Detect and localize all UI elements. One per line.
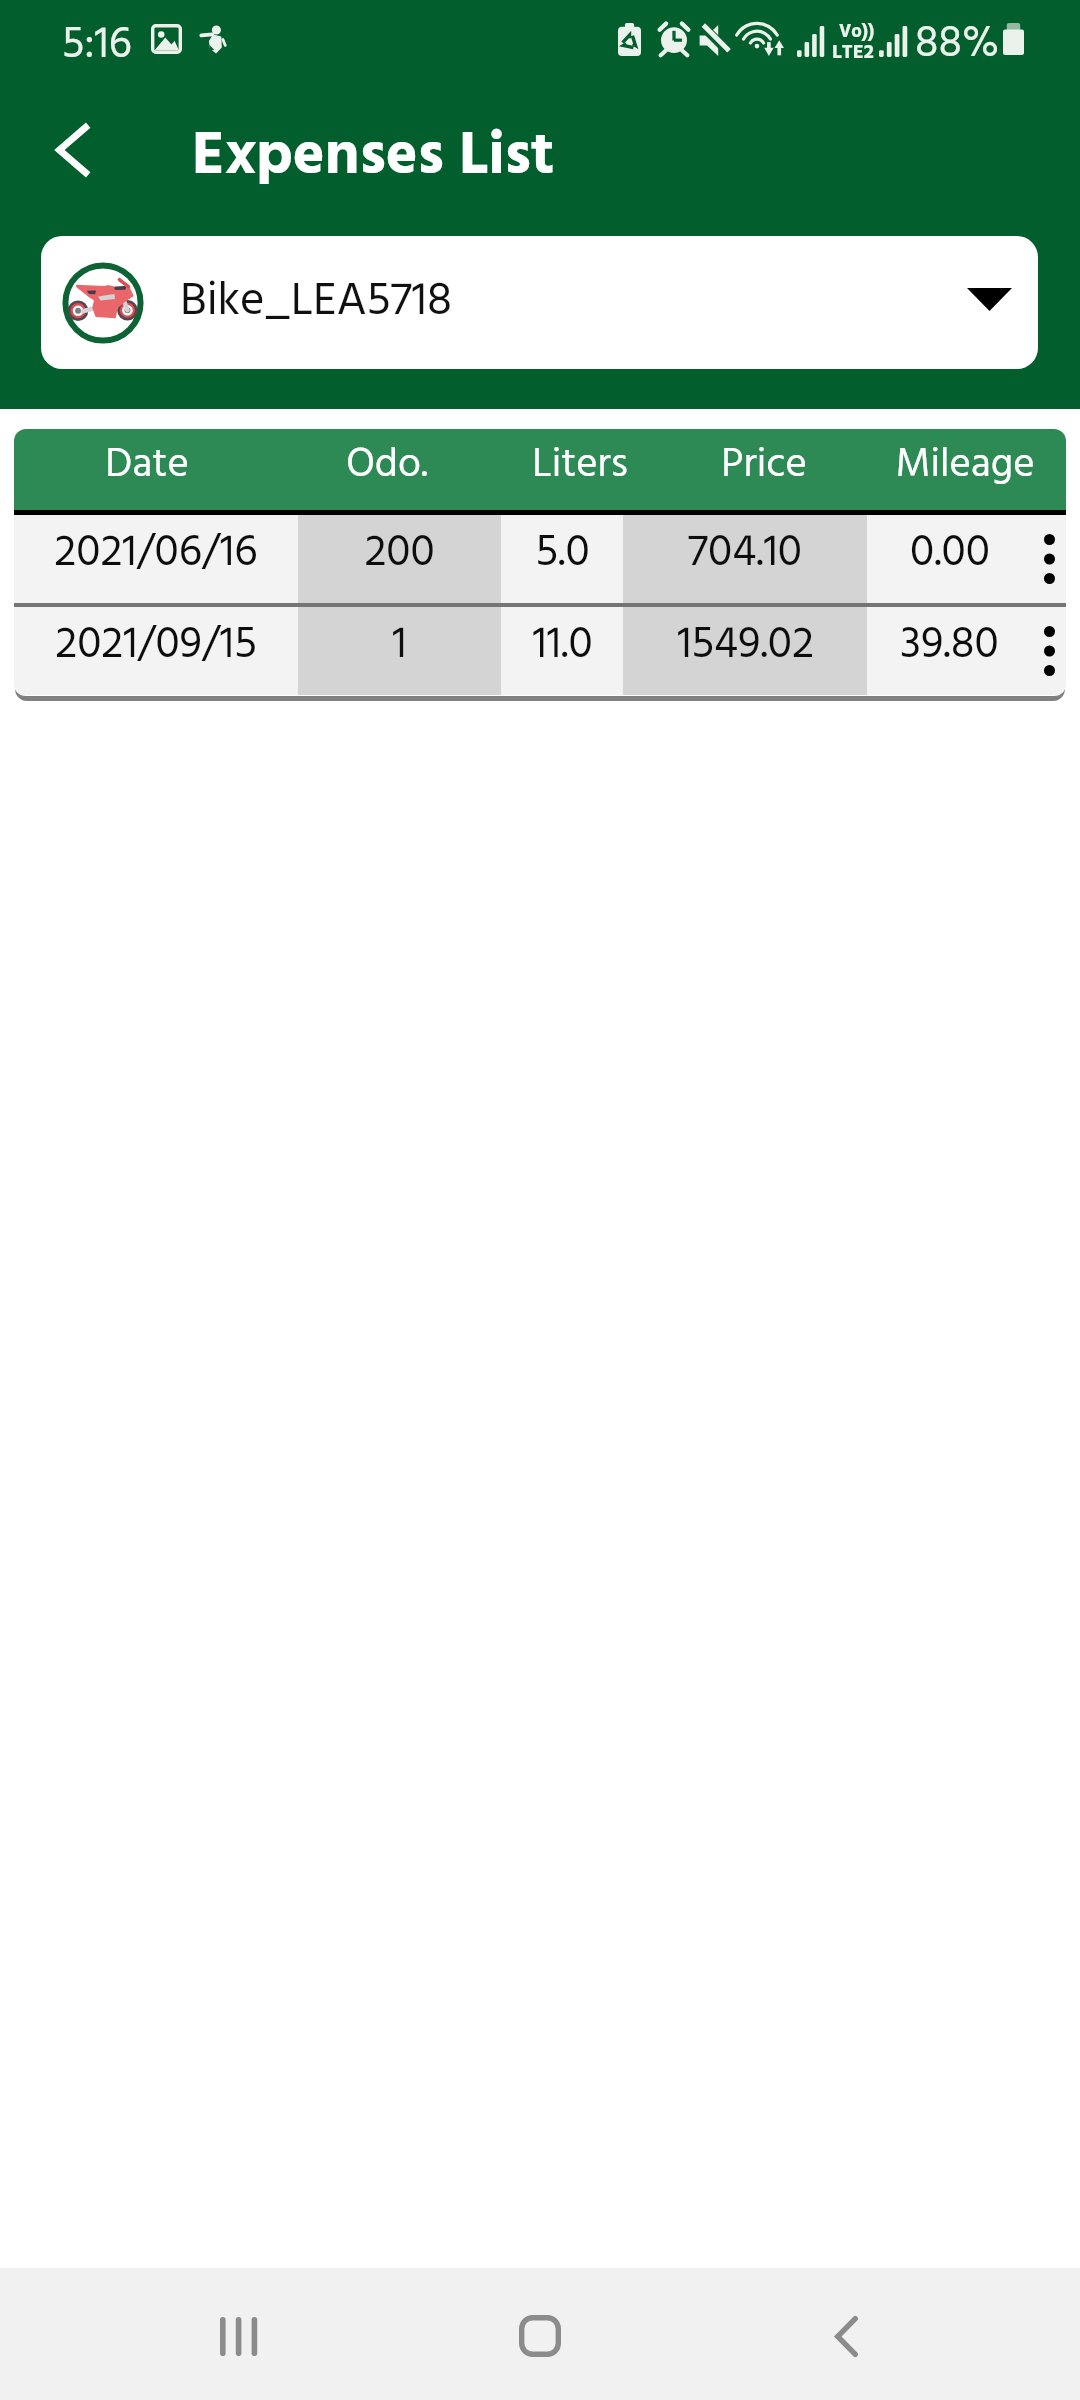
staticText: LTE2 — [832, 37, 874, 69]
button[interactable]: Recent apps — [162, 2268, 306, 2400]
button[interactable]: Home — [468, 2268, 612, 2400]
button[interactable]: More options — [1032, 607, 1066, 695]
staticText: 88% — [915, 10, 1000, 80]
button[interactable]: Back — [774, 2268, 918, 2400]
button[interactable]: Select vehicle: Bike_LEA5718 — [41, 236, 1038, 369]
staticText: 200 — [364, 518, 435, 589]
staticText: 11.0 — [532, 610, 593, 681]
staticText: Price — [721, 433, 807, 498]
staticText: Date — [105, 433, 189, 498]
button[interactable]: Back — [42, 114, 102, 186]
button[interactable]: More options — [1032, 515, 1066, 603]
staticText: Expenses List — [192, 110, 555, 206]
button[interactable]: 2021/06/16 — [14, 515, 1066, 603]
staticText: Vo)) — [839, 17, 875, 47]
staticText: Bike_LEA5718 — [180, 265, 452, 340]
button[interactable]: 2021/09/15 — [14, 607, 1066, 695]
staticText: 2021/06/16 — [54, 518, 258, 589]
staticText: Odo. — [346, 433, 428, 498]
staticText: 704.10 — [688, 518, 802, 589]
staticText: Liters — [532, 433, 628, 498]
staticText: 2021/09/15 — [55, 610, 257, 681]
staticText: 5:16 — [62, 11, 132, 81]
staticText: 0.00 — [910, 518, 990, 589]
staticText: 39.80 — [900, 610, 999, 681]
staticText: Mileage — [895, 433, 1035, 498]
staticText: 5.0 — [535, 518, 590, 589]
staticText: 1549.02 — [677, 610, 814, 681]
staticText: 1 — [392, 610, 407, 681]
